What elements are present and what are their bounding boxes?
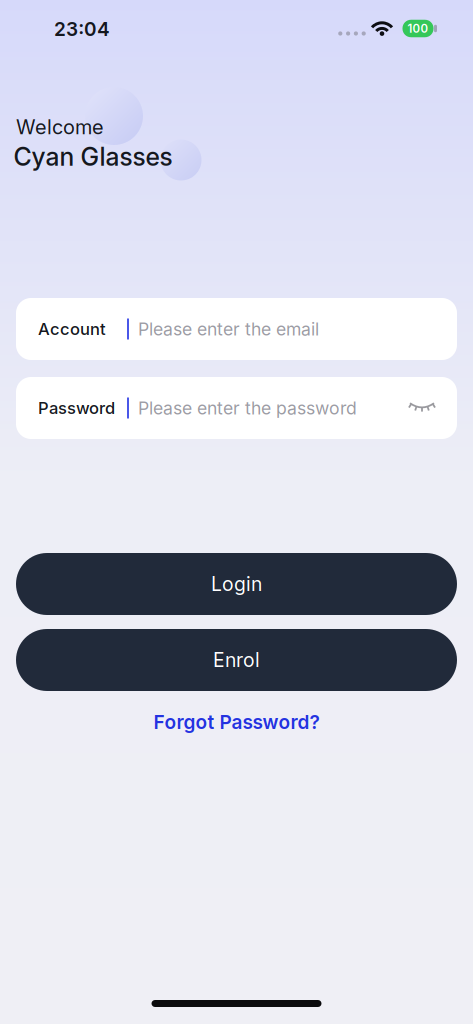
button[interactable]: Show password: [410, 402, 434, 414]
staticText: Login: [211, 572, 262, 596]
button[interactable]: Account: [16, 298, 457, 360]
staticText: 23:04: [54, 17, 110, 40]
staticText: Please enter the email: [138, 318, 319, 340]
staticText: Welcome: [16, 115, 104, 139]
staticText: Please enter the password: [138, 397, 357, 419]
staticText: Account: [38, 319, 106, 339]
staticText: Forgot Password?: [153, 710, 319, 734]
button[interactable]: Enrol: [16, 629, 457, 691]
button[interactable]: Forgot Password?: [153, 710, 319, 734]
staticText: Password: [38, 398, 115, 418]
staticText: Enrol: [213, 648, 260, 672]
staticText: Cyan Glasses: [13, 141, 172, 172]
staticText: 100: [407, 22, 428, 35]
button[interactable]: Login: [16, 553, 457, 615]
button[interactable]: Password: [16, 377, 457, 439]
